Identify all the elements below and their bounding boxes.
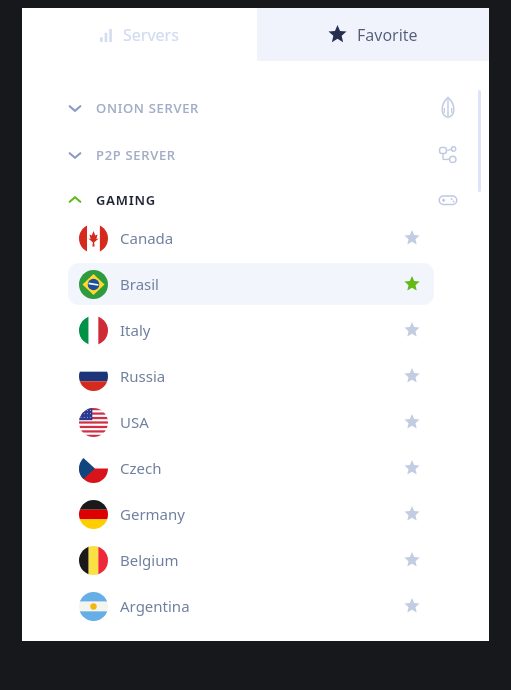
button[interactable]: Add Czech to favorites xyxy=(395,451,429,485)
staticText: Italy xyxy=(120,320,151,340)
button[interactable]: Argentina xyxy=(68,585,434,627)
button[interactable]: Add Russia to favorites xyxy=(395,359,429,393)
button[interactable]: GAMING xyxy=(68,180,458,220)
button[interactable]: Germany xyxy=(68,493,434,535)
button[interactable]: Brasil xyxy=(68,263,434,305)
staticText: Belgium xyxy=(120,550,179,570)
button[interactable]: Add USA to favorites xyxy=(395,405,429,439)
button[interactable]: Remove Brasil from favorites xyxy=(395,267,429,301)
staticText: P2P SERVER xyxy=(96,146,176,164)
button[interactable]: Add Belgium to favorites xyxy=(395,543,429,577)
button[interactable]: Add Canada to favorites xyxy=(395,221,429,255)
staticText: Favorite xyxy=(357,24,418,46)
button[interactable]: Add Germany to favorites xyxy=(395,497,429,531)
staticText: Servers xyxy=(123,24,179,46)
button[interactable]: Belgium xyxy=(68,539,434,581)
staticText: Canada xyxy=(120,228,174,248)
staticText: ONION SERVER xyxy=(96,99,200,117)
staticText: Germany xyxy=(120,504,185,524)
button[interactable]: Russia xyxy=(68,355,434,397)
staticText: Brasil xyxy=(120,274,159,294)
staticText: Russia xyxy=(120,366,166,386)
staticText: USA xyxy=(120,412,149,432)
staticText: Czech xyxy=(120,458,162,478)
button[interactable]: Canada xyxy=(68,217,434,259)
button[interactable]: P2P SERVER xyxy=(68,135,458,175)
staticText: Argentina xyxy=(120,596,190,616)
button[interactable]: Italy xyxy=(68,309,434,351)
button[interactable]: Add Argentina to favorites xyxy=(395,589,429,623)
button[interactable]: Add Italy to favorites xyxy=(395,313,429,347)
button[interactable]: USA xyxy=(68,401,434,443)
button[interactable]: Czech xyxy=(68,447,434,489)
button[interactable]: Favorite xyxy=(257,8,489,61)
button[interactable]: ONION SERVER xyxy=(68,88,458,128)
button[interactable]: Servers xyxy=(22,8,257,61)
staticText: GAMING xyxy=(96,191,156,209)
